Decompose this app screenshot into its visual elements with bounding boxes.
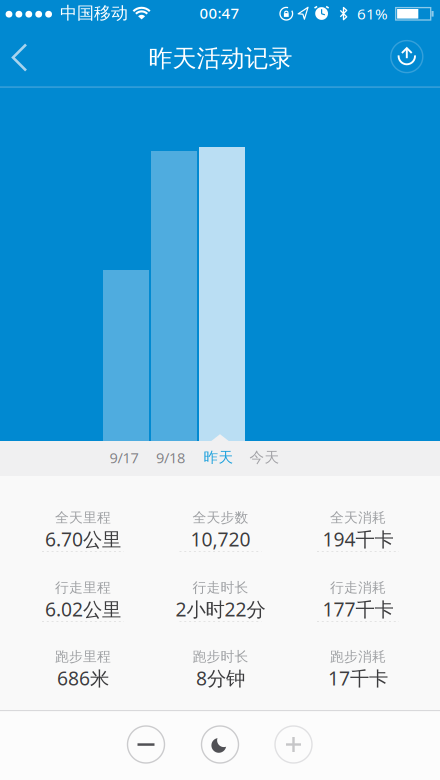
button[interactable]: Share <box>387 37 427 77</box>
staticText: 中国移动 <box>60 3 128 23</box>
staticText: 全天步数 <box>192 509 248 526</box>
button[interactable]: Remove <box>127 725 165 763</box>
button[interactable]: 昨天 <box>194 440 242 475</box>
staticText: 跑步时长 <box>192 648 248 665</box>
staticText: 686米 <box>57 665 109 691</box>
staticText: 8分钟 <box>196 665 245 691</box>
staticText: 17千卡 <box>328 665 388 691</box>
button[interactable]: Back <box>2 36 38 78</box>
staticText: 9/17 <box>109 448 138 467</box>
staticText: 跑步消耗 <box>330 648 386 665</box>
staticText: 跑步里程 <box>55 648 111 665</box>
staticText: 9/18 <box>156 448 185 467</box>
staticText: 194千卡 <box>322 526 393 552</box>
staticText: 2小时22分 <box>175 596 265 622</box>
staticText: 行走时长 <box>192 579 248 596</box>
staticText: 行走消耗 <box>330 579 386 596</box>
staticText: 00:47 <box>199 3 239 23</box>
staticText: 6.02公里 <box>45 596 121 622</box>
button[interactable]: Sleep <box>201 725 239 763</box>
button[interactable]: Add <box>274 725 312 763</box>
staticText: 177千卡 <box>322 596 393 622</box>
staticText: 今天 <box>249 448 279 466</box>
staticText: 全天消耗 <box>330 509 386 526</box>
staticText: 全天里程 <box>55 509 111 526</box>
staticText: 61% <box>357 3 388 24</box>
button[interactable]: 9/17 <box>100 440 148 475</box>
button[interactable]: 今天 <box>240 440 288 475</box>
staticText: 行走里程 <box>55 579 111 596</box>
staticText: 6.70公里 <box>45 526 121 552</box>
button[interactable]: 9/18 <box>146 440 194 475</box>
staticText: 10,720 <box>190 526 250 552</box>
staticText: 昨天 <box>203 448 233 466</box>
staticText: 昨天活动记录 <box>148 44 292 73</box>
